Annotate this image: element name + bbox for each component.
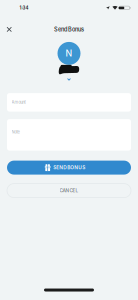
button[interactable]: SEND BONUS [0,161,138,175]
staticText: Note [11,130,19,135]
button[interactable]: CANCEL [0,184,138,198]
button[interactable]: Close [2,23,16,35]
staticText: Send Bonus [54,26,84,33]
staticText: Amount [11,100,25,105]
staticText: CANCEL [59,188,78,193]
button[interactable]: N [53,42,85,81]
staticText: SEND BONUS [53,165,85,170]
staticText: 1:34 [19,5,28,11]
staticText: N [65,48,72,59]
